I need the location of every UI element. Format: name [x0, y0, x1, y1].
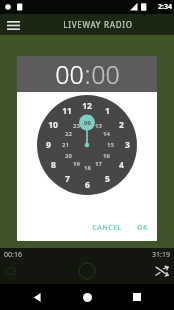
- staticText: 9: [46, 139, 51, 151]
- button[interactable]: Repeat: [3, 263, 19, 279]
- staticText: 16: [103, 152, 110, 160]
- staticText: 10: [48, 119, 58, 131]
- button[interactable]: Home: [74, 284, 100, 310]
- button[interactable]: Recent apps: [124, 284, 150, 310]
- staticText: 11: [62, 105, 72, 117]
- staticText: 8: [51, 159, 56, 171]
- staticText: 2: [119, 119, 124, 131]
- button[interactable]: Shuffle: [154, 263, 170, 279]
- staticText: 3: [125, 139, 130, 151]
- staticText: 20: [65, 152, 72, 160]
- staticText: :: [84, 57, 91, 91]
- staticText: 5: [105, 173, 110, 185]
- staticText: LIVEWAY RADIO: [63, 19, 133, 30]
- button[interactable]: 00: [17, 56, 157, 92]
- button[interactable]: Back: [24, 284, 50, 310]
- staticText: OK: [137, 223, 148, 233]
- staticText: 23: [73, 122, 80, 130]
- staticText: 19: [73, 160, 80, 168]
- button[interactable]: Play: [78, 262, 96, 280]
- staticText: 6: [85, 179, 90, 191]
- staticText: 13: [95, 122, 102, 130]
- staticText: 00:16: [4, 250, 22, 260]
- button[interactable]: OK: [132, 219, 153, 237]
- staticText: 2:34: [158, 2, 172, 12]
- staticText: 31:19: [152, 250, 170, 260]
- staticText: 4: [119, 159, 124, 171]
- staticText: 22: [65, 130, 72, 138]
- staticText: 00: [84, 119, 91, 127]
- staticText: 21: [62, 141, 69, 149]
- staticText: 7: [65, 173, 70, 185]
- staticText: 00: [55, 57, 84, 91]
- staticText: 12: [82, 100, 92, 112]
- staticText: 14: [103, 130, 110, 138]
- staticText: 17: [95, 160, 102, 168]
- staticText: 18: [84, 164, 91, 172]
- staticText: CANCEL: [92, 223, 122, 233]
- button[interactable]: Open navigation drawer: [4, 16, 22, 34]
- staticText: 15: [107, 141, 114, 149]
- staticText: 00: [91, 57, 120, 91]
- button[interactable]: CANCEL: [87, 219, 127, 237]
- staticText: 1: [105, 105, 110, 117]
